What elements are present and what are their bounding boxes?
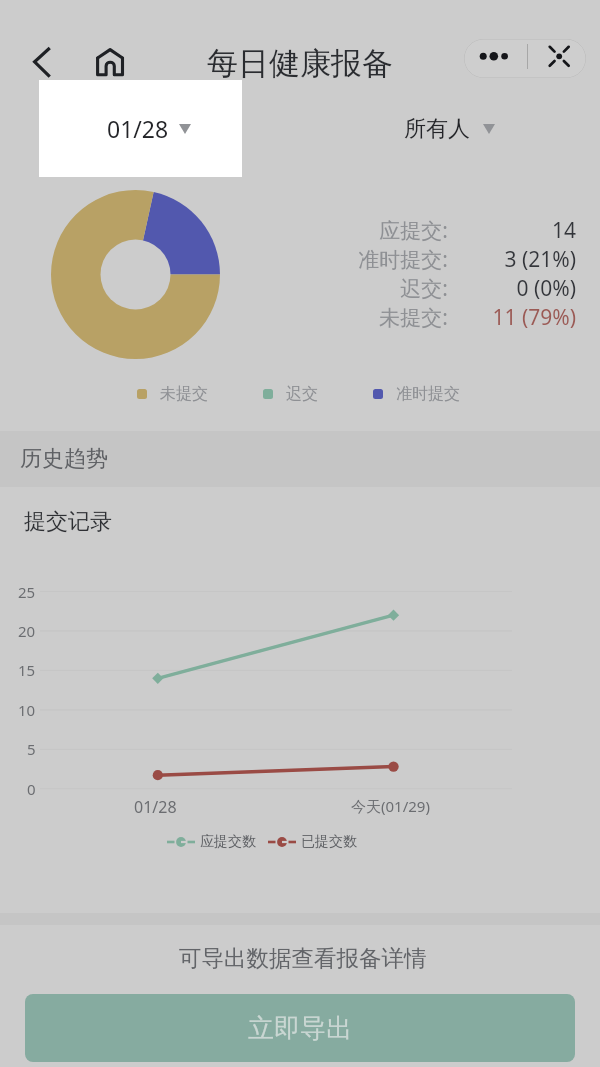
staticText: 14 (551, 216, 576, 245)
button[interactable]: Home (86, 40, 132, 86)
button[interactable]: 01/28 (39, 80, 242, 177)
staticText: 01/28 (134, 796, 177, 818)
staticText: 11 (79%) (492, 303, 576, 332)
staticText: 立即导出 (248, 1012, 352, 1045)
staticText: 已提交数 (301, 833, 357, 851)
staticText: 3 (21%) (504, 245, 576, 274)
staticText: 准时提交 (396, 384, 460, 404)
button[interactable]: More options (464, 39, 525, 78)
button[interactable]: 所有人 (404, 80, 495, 177)
staticText: 提交记录 (24, 508, 112, 536)
staticText: 未提交: (379, 303, 448, 332)
button[interactable]: Close (528, 39, 586, 78)
staticText: 可导出数据查看报备详情 (179, 944, 427, 972)
staticText: 今天(01/29) (351, 796, 430, 816)
staticText: 25 (18, 582, 36, 602)
staticText: 准时提交: (358, 245, 448, 274)
staticText: 20 (18, 621, 36, 641)
staticText: 0 (0%) (516, 274, 576, 303)
staticText: 10 (18, 700, 36, 720)
staticText: 01/28 (107, 113, 169, 144)
staticText: 未提交 (160, 384, 208, 404)
button[interactable]: Back (20, 40, 62, 82)
staticText: 历史趋势 (20, 445, 108, 473)
staticText: 5 (27, 739, 36, 759)
staticText: 迟交: (400, 274, 448, 303)
button[interactable]: 立即导出 (25, 994, 575, 1062)
staticText: 0 (27, 779, 36, 799)
staticText: 每日健康报备 (207, 44, 393, 83)
staticText: 15 (18, 660, 36, 680)
staticText: 所有人 (404, 115, 470, 143)
staticText: 应提交: (379, 216, 448, 245)
staticText: 应提交数 (200, 833, 256, 851)
staticText: 迟交 (286, 384, 318, 404)
